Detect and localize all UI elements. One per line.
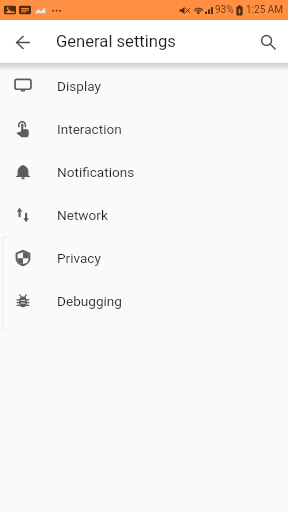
button[interactable]: Privacy	[0, 236, 288, 279]
staticText: General settings	[56, 32, 176, 51]
staticText: Network	[57, 207, 108, 223]
staticText: 93%	[215, 4, 234, 16]
button[interactable]: Network	[0, 193, 288, 236]
button[interactable]: Debugging	[0, 279, 288, 322]
staticText: Notifications	[57, 164, 135, 180]
button[interactable]: Display	[0, 64, 288, 107]
staticText: Privacy	[57, 250, 101, 266]
staticText: Display	[57, 78, 101, 94]
staticText: 1:25 AM	[246, 4, 284, 16]
staticText: Interaction	[57, 121, 122, 137]
button[interactable]: Notifications	[0, 150, 288, 193]
button[interactable]: Interaction	[0, 107, 288, 150]
button[interactable]: Search	[250, 24, 286, 60]
button[interactable]: Back	[5, 24, 41, 60]
staticText: Debugging	[57, 293, 122, 309]
